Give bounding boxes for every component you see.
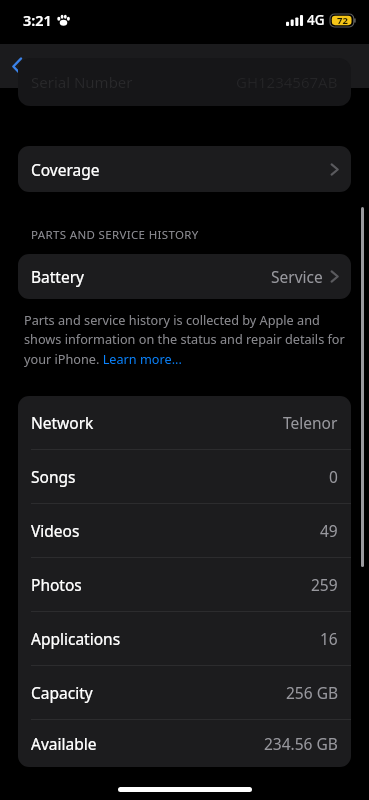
button[interactable]: Photos xyxy=(18,558,351,611)
button[interactable]: Battery xyxy=(18,254,351,299)
other: Cellular signal xyxy=(286,15,303,26)
staticText: Videos xyxy=(31,520,80,541)
other: Open xyxy=(330,269,339,284)
staticText: 72 xyxy=(337,14,348,27)
button[interactable]: Coverage xyxy=(18,146,351,192)
staticText: Capacity xyxy=(31,682,93,703)
staticText: Service xyxy=(271,266,323,287)
other: Open xyxy=(330,162,339,177)
staticText: Serial Number xyxy=(31,72,133,92)
staticText: Network xyxy=(31,412,94,433)
other: Focus mode xyxy=(57,14,70,27)
staticText: 49 xyxy=(320,520,338,541)
staticText: Telenor xyxy=(283,412,338,433)
staticText: 4G xyxy=(307,11,325,29)
button[interactable]: General xyxy=(8,49,91,83)
staticText: GH1234567AB xyxy=(236,72,338,92)
button[interactable]: Available xyxy=(18,720,351,767)
other: Battery 72 percent, Low Power Mode xyxy=(330,14,357,27)
staticText: 3:21 xyxy=(23,10,52,30)
staticText: Coverage xyxy=(31,159,100,180)
staticText: Battery xyxy=(31,266,85,287)
button[interactable]: Network xyxy=(18,396,351,449)
staticText: 259 xyxy=(311,574,338,595)
staticText: Available xyxy=(31,733,97,754)
button[interactable]: Capacity xyxy=(18,666,351,719)
button[interactable]: Songs xyxy=(18,450,351,503)
staticText: 0 xyxy=(329,466,338,487)
staticText: 234.56 GB xyxy=(264,733,338,754)
staticText: Songs xyxy=(31,466,76,487)
staticText: 256 GB xyxy=(286,682,338,703)
staticText: 16 xyxy=(320,628,338,649)
staticText: Applications xyxy=(31,628,121,649)
button[interactable]: Videos xyxy=(18,504,351,557)
button[interactable]: Applications xyxy=(18,612,351,665)
staticText: Photos xyxy=(31,574,82,595)
staticText: Parts and service history is collected b… xyxy=(24,311,346,368)
staticText: PARTS AND SERVICE HISTORY xyxy=(31,227,199,243)
